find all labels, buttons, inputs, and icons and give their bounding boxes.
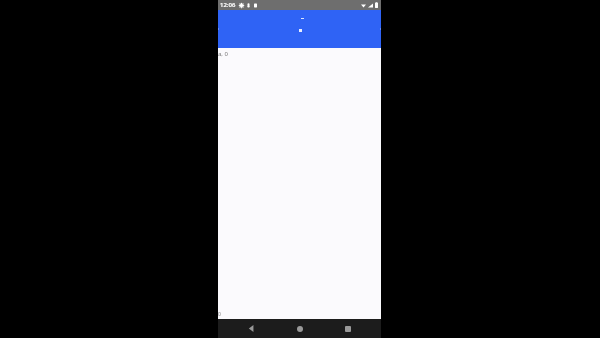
- staticText: 12:06: [220, 1, 236, 9]
- button[interactable]: Recent apps: [333, 319, 363, 338]
- button[interactable]: Back: [236, 319, 266, 338]
- button[interactable]: Home: [285, 319, 315, 338]
- staticText: a, 0: [218, 50, 228, 58]
- button[interactable]: [218, 10, 381, 48]
- staticText: 0: [218, 311, 221, 318]
